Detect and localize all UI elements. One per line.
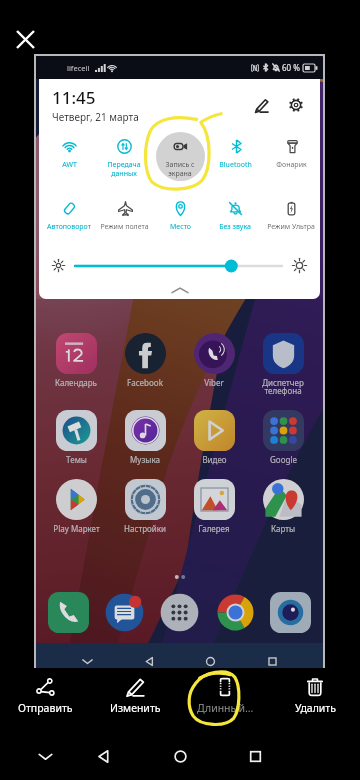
button[interactable]: Настройки bbox=[112, 479, 178, 534]
button[interactable]: Recents bbox=[236, 737, 274, 775]
staticText: Темы bbox=[66, 454, 87, 465]
button[interactable]: Автоповорот bbox=[42, 194, 96, 238]
button[interactable]: Длинный… bbox=[180, 668, 270, 720]
button[interactable]: Диспетчер телефона bbox=[250, 333, 316, 396]
button[interactable] bbox=[262, 651, 282, 671]
button[interactable]: Место bbox=[153, 194, 207, 238]
staticText: Facebook bbox=[127, 377, 163, 388]
staticText: 11:45 bbox=[52, 86, 96, 109]
staticText: Календарь bbox=[55, 377, 97, 388]
staticText: 60 % bbox=[282, 62, 300, 73]
button[interactable]: Messages bbox=[104, 592, 145, 633]
staticText: Музыка bbox=[130, 454, 160, 465]
staticText: Видео bbox=[202, 454, 227, 465]
button[interactable]: Изменить bbox=[90, 668, 180, 720]
staticText: Карты bbox=[271, 523, 295, 534]
button[interactable]: Settings bbox=[283, 92, 309, 118]
button[interactable]: Google bbox=[250, 410, 316, 465]
staticText: Изменить bbox=[110, 701, 161, 715]
button[interactable]: Viber bbox=[181, 333, 247, 388]
button[interactable] bbox=[77, 651, 97, 671]
staticText: Без звука bbox=[219, 222, 251, 232]
staticText: Режим полета bbox=[100, 222, 149, 232]
button[interactable]: Удалить bbox=[270, 668, 360, 720]
button[interactable]: Музыка bbox=[112, 410, 178, 465]
button[interactable]: Camera bbox=[270, 592, 311, 633]
staticText: Отправить bbox=[18, 701, 73, 715]
staticText: Четверг, 21 марта bbox=[52, 110, 139, 124]
staticText: Длинный… bbox=[197, 701, 254, 715]
button[interactable]: Play Маркет bbox=[43, 479, 109, 534]
button[interactable]: Карты bbox=[250, 479, 316, 534]
button[interactable]: Chrome bbox=[215, 592, 256, 633]
button[interactable]: Back bbox=[84, 737, 122, 775]
button[interactable]: Home bbox=[161, 737, 199, 775]
button[interactable]: Фонарик bbox=[264, 132, 318, 182]
button[interactable]: AWT bbox=[42, 132, 96, 182]
button[interactable]: Календарь bbox=[43, 333, 109, 388]
button[interactable]: Close bbox=[8, 22, 42, 56]
staticText: Фонарик bbox=[276, 160, 307, 170]
button[interactable]: Apps bbox=[159, 592, 200, 633]
button[interactable]: Запись с экрана bbox=[153, 132, 207, 182]
staticText: Галерея bbox=[198, 523, 230, 534]
staticText: Режим Ультра bbox=[267, 222, 315, 232]
button[interactable]: Режим полета bbox=[97, 194, 151, 238]
staticText: Место bbox=[170, 222, 191, 232]
staticText: Автоповорот bbox=[47, 222, 91, 232]
button[interactable]: Edit bbox=[248, 92, 274, 118]
staticText: Play Маркет bbox=[53, 523, 100, 534]
staticText: Google bbox=[270, 454, 297, 465]
button[interactable]: Темы bbox=[43, 410, 109, 465]
staticText: lifecell bbox=[67, 63, 90, 73]
staticText: Передача данных bbox=[107, 160, 141, 178]
button[interactable]: Галерея bbox=[181, 479, 247, 534]
button[interactable]: Передача данных bbox=[97, 132, 151, 182]
staticText: Viber bbox=[204, 377, 224, 388]
staticText: Диспетчер телефона bbox=[262, 377, 304, 396]
button[interactable]: Phone bbox=[48, 592, 89, 633]
button[interactable]: Hide keyboard bbox=[26, 737, 64, 775]
staticText: Удалить bbox=[295, 701, 336, 715]
button[interactable]: Bluetooth bbox=[208, 132, 262, 182]
staticText: Bluetooth bbox=[219, 160, 252, 170]
button[interactable] bbox=[139, 651, 159, 671]
button[interactable]: Без звука bbox=[208, 194, 262, 238]
staticText: AWT bbox=[62, 160, 77, 170]
staticText: Запись с экрана bbox=[165, 160, 195, 178]
button[interactable]: Отправить bbox=[0, 668, 90, 720]
staticText: Настройки bbox=[124, 523, 166, 534]
button[interactable]: Facebook bbox=[112, 333, 178, 388]
button[interactable]: Видео bbox=[181, 410, 247, 465]
button[interactable]: Режим Ультра bbox=[264, 194, 318, 238]
button[interactable] bbox=[200, 651, 220, 671]
